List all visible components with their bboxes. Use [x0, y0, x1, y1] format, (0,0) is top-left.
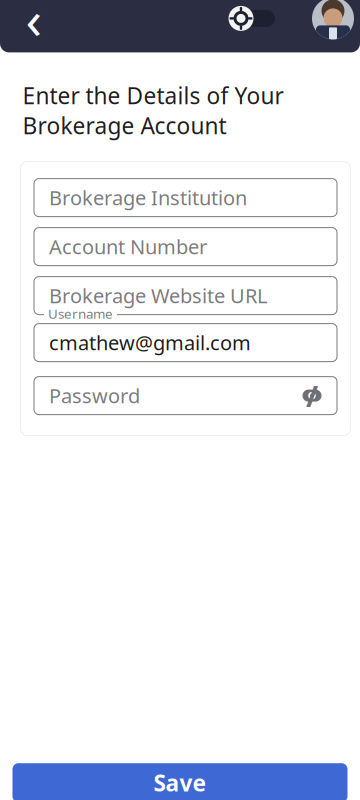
button[interactable]: Toggle theme	[224, 4, 276, 32]
button[interactable]: Password	[34, 377, 337, 415]
staticText: Account Number	[49, 233, 207, 260]
staticText: Enter the Details of Your Brokerage Acco…	[22, 80, 283, 141]
button[interactable]: cmathew@gmail.com	[34, 320, 337, 366]
staticText: Save	[153, 768, 206, 798]
button[interactable]: Account Number	[34, 228, 337, 266]
staticText: Username	[48, 305, 113, 322]
button[interactable]: Brokerage Website URL	[34, 277, 337, 315]
button[interactable]: Profile	[312, 0, 354, 39]
button[interactable]: Back	[10, 0, 58, 42]
staticText: cmathew@gmail.com	[49, 329, 251, 356]
button[interactable]: Brokerage Institution	[34, 179, 337, 217]
staticText: Brokerage Institution	[49, 184, 247, 211]
staticText: Brokerage Website URL	[49, 282, 267, 309]
button[interactable]: Save	[12, 763, 347, 800]
staticText: ‹	[25, 0, 42, 54]
staticText: /	[306, 376, 318, 415]
staticText: Password	[49, 382, 140, 409]
